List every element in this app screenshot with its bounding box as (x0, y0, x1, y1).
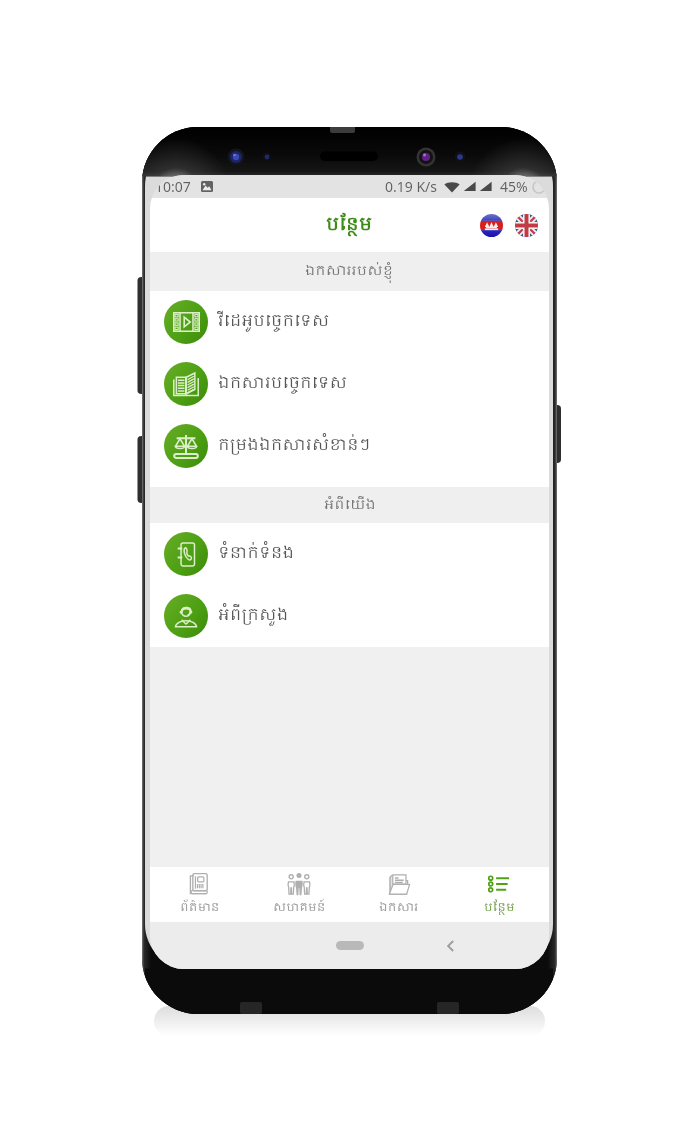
staticText: 45% (500, 177, 528, 196)
staticText: ឯកសារ (379, 898, 419, 918)
button[interactable]: Switch to Khmer (480, 214, 503, 237)
staticText: 10:07 (155, 177, 191, 196)
staticText: 0.19 K/s (385, 177, 437, 196)
staticText: ឯកសារបច្ចេកទេស (218, 371, 348, 397)
button[interactable]: កម្រងឯកសារសំខាន់ៗ (150, 415, 549, 477)
button[interactable]: ឯកសារបច្ចេកទេស (150, 353, 549, 415)
staticText: ឯកសាររបស់ខ្ញុំ (305, 260, 394, 283)
staticText: កម្រងឯកសារសំខាន់ៗ (218, 433, 371, 459)
staticText: បន្ថែម (326, 210, 373, 240)
button[interactable]: ទំនាក់ទំនង (150, 523, 549, 585)
button[interactable]: Back (442, 937, 460, 955)
button[interactable]: បន្ថែម (449, 867, 549, 922)
staticText: ទំនាក់ទំនង (218, 541, 295, 567)
button[interactable]: Home (336, 941, 364, 950)
button[interactable]: សហគមន៍ (249, 867, 349, 922)
staticText: អំពីយើង (324, 494, 376, 517)
button[interactable]: ឯកសារ (349, 867, 449, 922)
staticText: សហគមន៍ (273, 898, 326, 918)
button[interactable]: Switch to English (515, 214, 538, 237)
button[interactable]: វីដេអូបច្ចេកទេស (150, 291, 549, 353)
staticText: ព័ត៌មាន (180, 898, 220, 918)
staticText: វីដេអូបច្ចេកទេស (218, 309, 330, 335)
staticText: អំពីក្រសួង (218, 603, 289, 629)
staticText: បន្ថែម (484, 898, 515, 918)
button[interactable]: ព័ត៌មាន (150, 867, 249, 922)
button[interactable]: អំពីក្រសួង (150, 585, 549, 647)
